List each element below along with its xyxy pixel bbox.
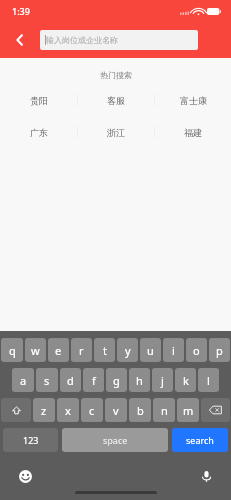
staticText: d: [67, 373, 74, 388]
button[interactable]: 广东: [0, 125, 77, 139]
staticText: 客服: [107, 95, 125, 106]
staticText: space: [103, 434, 128, 446]
button[interactable]: v: [105, 398, 127, 422]
staticText: l: [207, 373, 210, 388]
staticText: 福建: [184, 127, 202, 138]
button[interactable]: Emoji: [14, 465, 36, 487]
button[interactable]: m: [177, 398, 199, 422]
button[interactable]: t: [94, 338, 115, 362]
button[interactable]: k: [175, 368, 196, 392]
button[interactable]: space: [62, 428, 168, 452]
staticText: 富士康: [180, 95, 207, 106]
button[interactable]: 富士康: [155, 93, 231, 107]
button[interactable]: 输入岗位或企业名称: [40, 30, 198, 50]
button[interactable]: f: [83, 368, 104, 392]
staticText: search: [186, 434, 214, 446]
staticText: x: [65, 403, 71, 418]
staticText: k: [183, 373, 189, 388]
staticText: s: [44, 373, 50, 388]
staticText: t: [103, 343, 107, 358]
button[interactable]: 浙江: [78, 125, 154, 139]
staticText: z: [41, 403, 47, 418]
button[interactable]: y: [117, 338, 138, 362]
staticText: h: [136, 373, 143, 388]
staticText: o: [193, 343, 200, 358]
button[interactable]: Backspace: [201, 398, 230, 422]
staticText: 输入岗位或企业名称: [46, 35, 118, 45]
staticText: m: [183, 403, 194, 418]
staticText: r: [79, 343, 84, 358]
button[interactable]: h: [129, 368, 150, 392]
button[interactable]: i: [163, 338, 184, 362]
button[interactable]: 贵阳: [0, 93, 77, 107]
staticText: c: [89, 403, 95, 418]
staticText: w: [31, 343, 40, 358]
staticText: f: [92, 373, 96, 388]
button[interactable]: 客服: [78, 93, 154, 107]
staticText: 1:39: [12, 5, 30, 17]
staticText: b: [137, 403, 144, 418]
button[interactable]: q: [1, 338, 23, 362]
button[interactable]: search: [172, 428, 228, 452]
staticText: a: [20, 373, 27, 388]
button[interactable]: 123: [3, 428, 58, 452]
button[interactable]: j: [152, 368, 173, 392]
staticText: 广东: [30, 127, 48, 138]
staticText: 123: [23, 434, 39, 446]
staticText: i: [172, 343, 175, 358]
button[interactable]: 福建: [155, 125, 231, 139]
staticText: 热门搜索: [100, 70, 132, 80]
button[interactable]: a: [12, 368, 34, 392]
button[interactable]: z: [33, 398, 55, 422]
button[interactable]: u: [140, 338, 161, 362]
staticText: y: [125, 343, 131, 358]
button[interactable]: p: [209, 338, 230, 362]
staticText: v: [113, 403, 119, 418]
staticText: g: [113, 373, 120, 388]
staticText: e: [55, 343, 62, 358]
button[interactable]: w: [25, 338, 46, 362]
button[interactable]: d: [60, 368, 81, 392]
button[interactable]: g: [106, 368, 127, 392]
staticText: n: [161, 403, 168, 418]
button[interactable]: c: [81, 398, 103, 422]
button[interactable]: s: [36, 368, 58, 392]
button[interactable]: x: [57, 398, 79, 422]
button[interactable]: Shift: [1, 398, 31, 422]
staticText: p: [216, 343, 223, 358]
staticText: j: [161, 373, 164, 388]
button[interactable]: Back: [0, 22, 40, 58]
button[interactable]: r: [71, 338, 92, 362]
button[interactable]: Voice input: [195, 465, 217, 487]
staticText: 贵阳: [30, 95, 48, 106]
button[interactable]: n: [153, 398, 175, 422]
button[interactable]: b: [129, 398, 151, 422]
staticText: 浙江: [107, 127, 125, 138]
button[interactable]: l: [198, 368, 219, 392]
staticText: u: [147, 343, 154, 358]
staticText: q: [9, 343, 16, 358]
button[interactable]: e: [48, 338, 69, 362]
button[interactable]: o: [186, 338, 207, 362]
